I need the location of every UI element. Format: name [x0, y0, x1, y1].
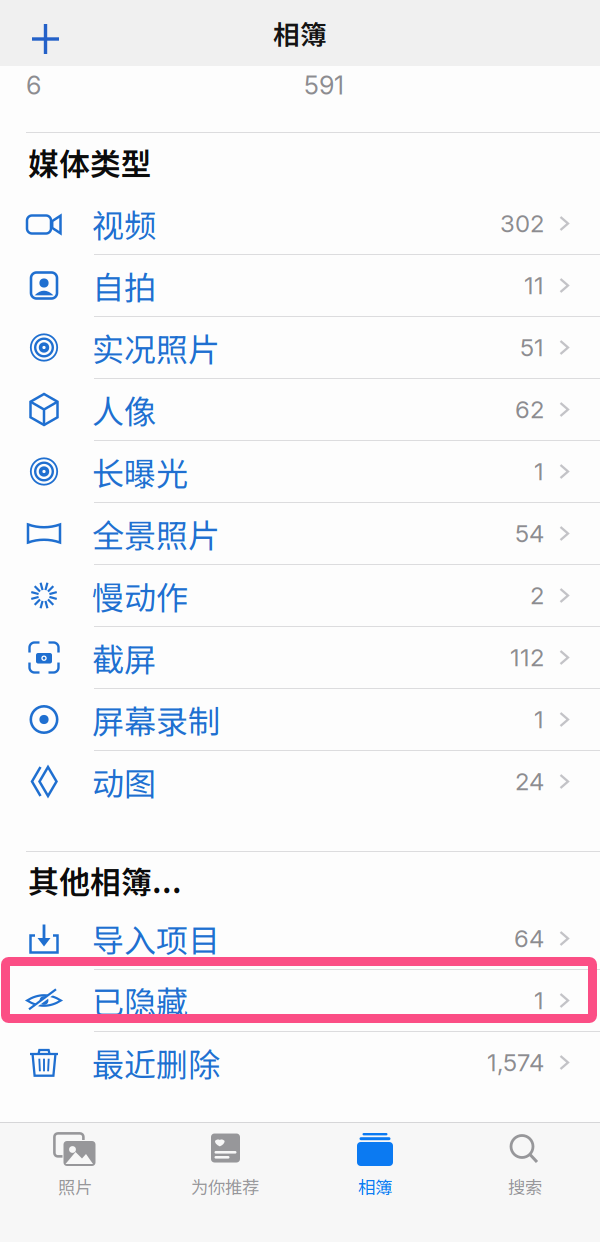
button[interactable]: 照片	[0, 1123, 150, 1242]
staticText: 112	[510, 643, 544, 672]
button[interactable]: 自拍	[0, 255, 600, 316]
button[interactable]: 最近删除	[0, 1032, 600, 1093]
button[interactable]: 人像	[0, 379, 600, 440]
staticText: 全景照片	[92, 510, 220, 557]
staticText: 视频	[92, 200, 156, 247]
staticText: 1	[534, 457, 544, 486]
staticText: 照片	[58, 1174, 92, 1199]
button[interactable]: 视频	[0, 193, 600, 254]
staticText: 1,574	[487, 1048, 544, 1077]
staticText: 慢动作	[92, 572, 188, 619]
staticText: 导入项目	[92, 915, 220, 962]
staticText: 已隐藏	[92, 977, 188, 1024]
staticText: 51	[520, 333, 544, 362]
staticText: 动图	[92, 758, 156, 805]
button[interactable]: 导入项目	[0, 908, 600, 969]
staticText: 11	[524, 271, 544, 300]
staticText: 24	[515, 767, 544, 796]
staticText: 54	[515, 519, 544, 548]
staticText: 相簿	[273, 14, 327, 52]
staticText: 591	[304, 70, 344, 101]
staticText: 自拍	[92, 262, 156, 309]
button[interactable]: 截屏	[0, 627, 600, 688]
button[interactable]: 实况照片	[0, 317, 600, 378]
staticText: 屏幕录制	[92, 696, 220, 743]
staticText: 其他相簿...	[28, 858, 182, 902]
staticText: 6	[26, 70, 41, 101]
button[interactable]: 相簿	[300, 1123, 450, 1242]
button[interactable]: 全景照片	[0, 503, 600, 564]
button[interactable]: 长曝光	[0, 441, 600, 502]
button[interactable]: 慢动作	[0, 565, 600, 626]
staticText: 人像	[92, 386, 156, 433]
staticText: 62	[515, 395, 544, 424]
button[interactable]: 已隐藏	[0, 970, 600, 1031]
staticText: 相簿	[358, 1174, 392, 1199]
button[interactable]: 搜索	[450, 1123, 600, 1242]
staticText: 1	[534, 986, 544, 1015]
staticText: 实况照片	[92, 324, 220, 371]
staticText: 2	[530, 581, 544, 610]
staticText: 搜索	[508, 1174, 542, 1199]
staticText: 媒体类型	[28, 140, 152, 184]
button[interactable]: New Album	[0, 0, 72, 66]
staticText: 截屏	[92, 634, 156, 681]
staticText: 302	[500, 209, 544, 238]
staticText: 64	[514, 924, 544, 953]
staticText: 长曝光	[92, 448, 188, 495]
staticText: 为你推荐	[191, 1174, 259, 1199]
staticText: 1	[534, 705, 544, 734]
button[interactable]: 为你推荐	[150, 1123, 300, 1242]
button[interactable]: 屏幕录制	[0, 689, 600, 750]
button[interactable]: 动图	[0, 751, 600, 812]
staticText: 最近删除	[92, 1039, 220, 1086]
